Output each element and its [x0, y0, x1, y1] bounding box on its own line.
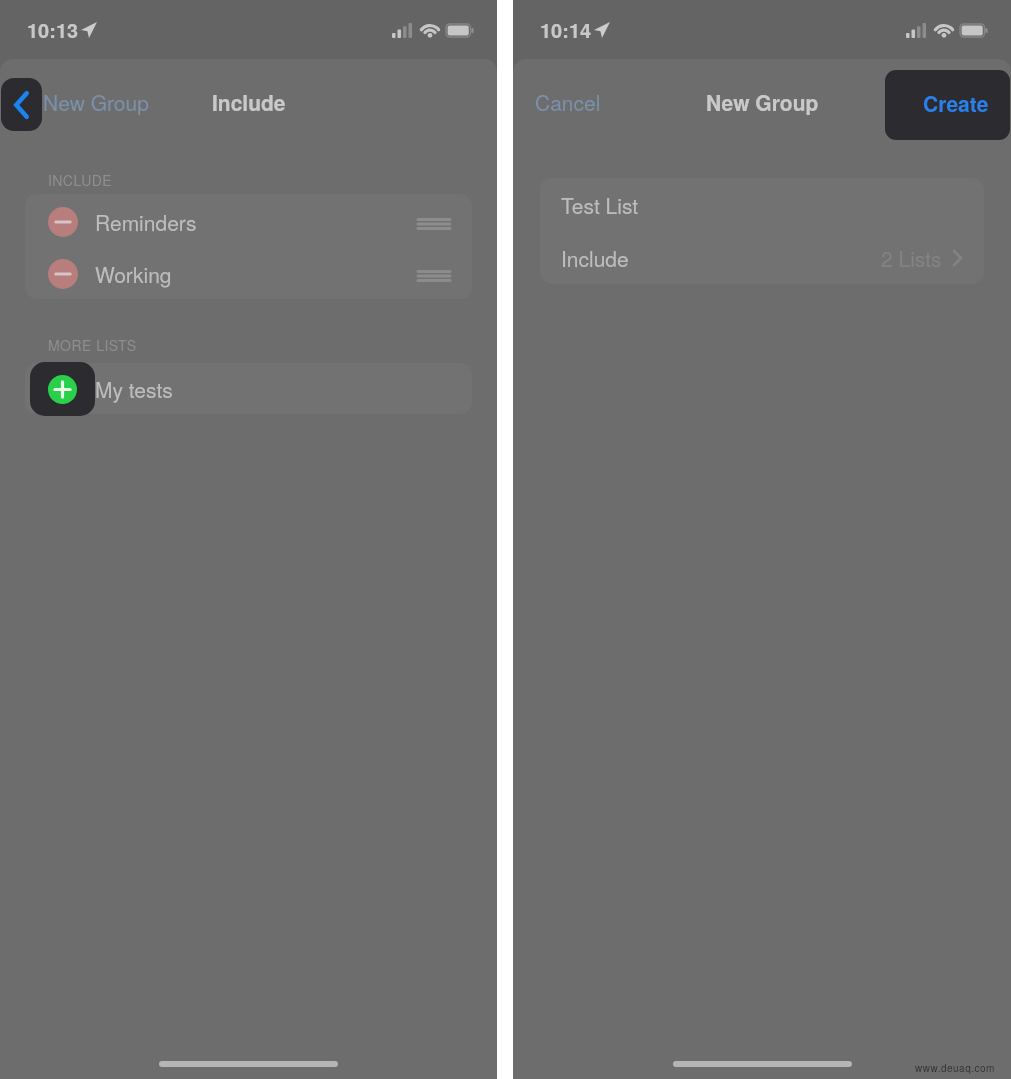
button[interactable]: My tests [25, 363, 472, 414]
button[interactable]: Add list [30, 362, 95, 416]
staticText: 10:14 [540, 15, 592, 44]
staticText: Cancel [535, 87, 601, 117]
staticText: Working [95, 259, 172, 289]
staticText: Test List [561, 190, 639, 220]
staticText: 2 Lists [881, 243, 942, 273]
button[interactable]: Back [1, 78, 42, 131]
staticText: 10:13 [27, 15, 79, 44]
staticText: MORE LISTS [48, 335, 137, 355]
button[interactable]: Cancel [513, 74, 617, 130]
staticText: Include [561, 243, 629, 273]
staticText: Include [212, 87, 286, 117]
button[interactable]: Include [540, 231, 984, 284]
staticText: New Group [706, 87, 819, 117]
button[interactable]: New Group [0, 74, 161, 130]
staticText: Create [923, 88, 989, 118]
button[interactable]: Reminders [25, 194, 472, 246]
button[interactable]: Create [885, 70, 1010, 140]
staticText: INCLUDE [48, 170, 113, 190]
staticText: www.deuaq.com [915, 1061, 995, 1075]
staticText: Reminders [95, 207, 197, 237]
staticText: New Group [43, 87, 149, 117]
button[interactable]: Working [25, 246, 472, 298]
staticText: My tests [95, 374, 173, 404]
